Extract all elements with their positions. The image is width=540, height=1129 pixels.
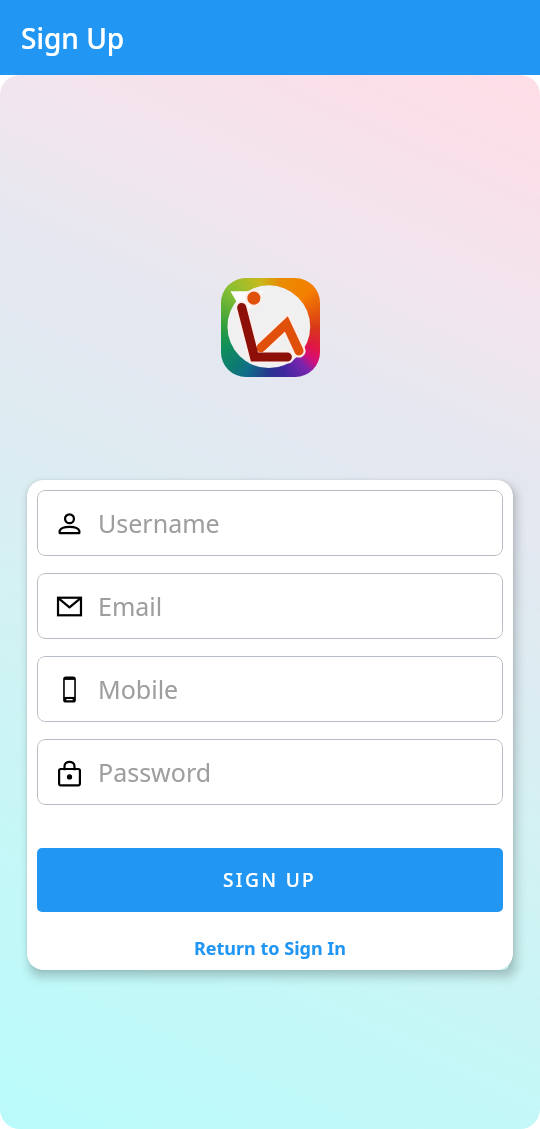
other: Mobile	[56, 676, 83, 703]
staticText: Email	[98, 589, 163, 623]
button[interactable]: Return to Sign In	[37, 912, 503, 970]
other: Password	[56, 759, 83, 786]
staticText: Return to Sign In	[194, 936, 346, 961]
staticText: Mobile	[98, 672, 179, 706]
staticText: Password	[98, 755, 212, 789]
button[interactable]: Username	[37, 490, 503, 556]
button[interactable]: Password	[37, 739, 503, 805]
staticText: SIGN UP	[223, 867, 317, 893]
button[interactable]: Mobile	[37, 656, 503, 722]
other: Email	[56, 593, 83, 620]
button[interactable]: SIGN UP	[37, 848, 503, 912]
other: Username	[56, 510, 83, 537]
staticText: Sign Up	[21, 19, 125, 57]
staticText: Username	[98, 506, 220, 540]
button[interactable]: Email	[37, 573, 503, 639]
other: App logo	[221, 278, 320, 377]
